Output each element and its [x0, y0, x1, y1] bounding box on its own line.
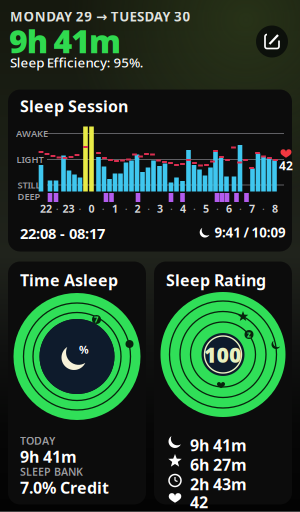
staticText: 100 [204, 340, 242, 369]
staticText: STILL [17, 179, 40, 191]
staticText: Sleep Session [20, 95, 128, 117]
staticText: 9h 41m [9, 19, 121, 62]
staticText: · [262, 201, 265, 216]
staticText: 6 [226, 201, 232, 216]
staticText: · [102, 201, 105, 216]
staticText: · [216, 201, 219, 216]
staticText: 4 [180, 201, 186, 216]
button[interactable]: Sleep Rating [154, 261, 292, 504]
staticText: 22:08 - 08:17 [20, 223, 105, 243]
staticText: Sleep Efficiency: 95%. [10, 53, 144, 71]
staticText: 9h 41m [190, 434, 247, 456]
staticText: TODAY [20, 433, 55, 448]
staticText: · [193, 201, 196, 216]
staticText: 3 [157, 201, 163, 216]
staticText: % [79, 342, 89, 357]
staticText: 7 [249, 201, 255, 216]
staticText: · [56, 201, 59, 216]
staticText: Time Asleep [20, 269, 118, 291]
staticText: 0 [88, 201, 94, 216]
staticText: · [125, 201, 128, 216]
staticText: 2 [134, 201, 140, 216]
staticText: 7.0% Credit [20, 477, 109, 498]
staticText: LIGHT [16, 153, 43, 166]
staticText: · [170, 201, 173, 216]
button[interactable]: Sleep Session [8, 89, 292, 251]
staticText: 6h 27m [190, 454, 247, 475]
staticText: 9:41 / 10:09 [214, 223, 286, 241]
staticText: 1 [112, 201, 118, 216]
staticText: 22 [40, 201, 52, 216]
staticText: 7 [94, 314, 99, 325]
staticText: 42 [279, 157, 293, 173]
staticText: 5 [203, 201, 209, 216]
button[interactable]: Time Asleep [8, 261, 146, 504]
staticText: AWAKE [16, 127, 48, 140]
staticText: DEEP [17, 190, 40, 203]
staticText: · [147, 201, 150, 216]
staticText: Sleep Rating [166, 269, 266, 291]
staticText: 23 [62, 201, 74, 216]
staticText: 42 [190, 491, 208, 512]
staticText: 9h 41m [20, 446, 77, 467]
staticText: · [78, 201, 81, 216]
staticText: 8 [272, 201, 278, 216]
staticText: SLEEP BANK [20, 464, 83, 479]
button[interactable]: Edit session [256, 25, 288, 57]
staticText: 2h 43m [190, 473, 247, 495]
staticText: · [239, 201, 242, 216]
staticText: z [247, 329, 251, 340]
staticText: MONDAY 29 → TUESDAY 30 [10, 7, 190, 25]
